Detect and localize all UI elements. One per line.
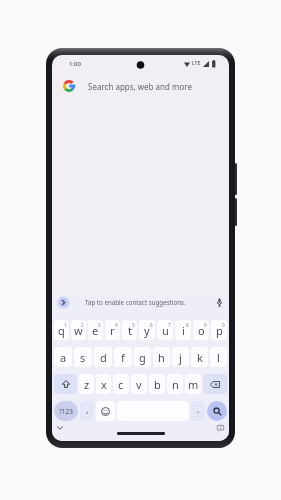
staticText: g (139, 350, 146, 365)
button[interactable]: b (149, 374, 165, 394)
staticText: c (118, 377, 124, 392)
staticText: 3 (98, 322, 101, 328)
button[interactable]: w (71, 320, 86, 340)
button[interactable]: x (96, 374, 111, 394)
button[interactable]: g (134, 347, 151, 367)
staticText: LTE (192, 60, 201, 67)
button[interactable]: a (54, 347, 72, 367)
button[interactable] (96, 401, 115, 421)
button[interactable]: s (74, 347, 92, 367)
staticText: w (74, 323, 83, 338)
button[interactable] (54, 374, 77, 394)
button[interactable]: ?123 (54, 401, 78, 421)
staticText: 0 (222, 322, 225, 328)
button[interactable]: , (80, 401, 94, 421)
staticText: m (188, 377, 199, 392)
staticText: d (100, 350, 107, 365)
button[interactable]: o (193, 320, 209, 340)
staticText: k (197, 350, 203, 365)
button[interactable] (57, 426, 63, 430)
button[interactable]: d (94, 347, 112, 367)
button[interactable]: i (175, 320, 191, 340)
staticText: e (92, 323, 99, 338)
staticText: f (121, 350, 125, 365)
button[interactable]: n (167, 374, 183, 394)
staticText: 1 (64, 322, 67, 328)
button[interactable] (207, 401, 227, 421)
staticText: 1:00 (69, 60, 81, 68)
staticText: , (86, 403, 89, 415)
staticText: b (154, 377, 161, 392)
staticText: p (216, 323, 223, 338)
staticText: u (162, 323, 169, 338)
button[interactable]: l (210, 347, 227, 367)
staticText: 8 (186, 322, 189, 328)
button[interactable]: p (211, 320, 227, 340)
staticText: 5 (132, 322, 135, 328)
staticText: ?123 (59, 407, 73, 416)
staticText: x (101, 377, 107, 392)
staticText: q (58, 323, 65, 338)
button[interactable]: e (88, 320, 103, 340)
button[interactable]: v (131, 374, 147, 394)
staticText: n (172, 377, 179, 392)
staticText: h (158, 350, 165, 365)
button[interactable]: m (185, 374, 201, 394)
staticText: r (110, 323, 115, 338)
button[interactable]: Search apps, web and more (63, 70, 219, 102)
button[interactable]: . (191, 401, 205, 421)
staticText: . (197, 403, 200, 415)
button[interactable] (203, 374, 227, 394)
button[interactable]: h (153, 347, 170, 367)
button[interactable]: t (122, 320, 137, 340)
staticText: o (198, 323, 205, 338)
button[interactable] (216, 298, 223, 307)
button[interactable]: z (79, 374, 94, 394)
staticText: 6 (150, 322, 153, 328)
staticText: i (182, 323, 185, 338)
button[interactable]: k (191, 347, 208, 367)
staticText: 2 (81, 322, 84, 328)
staticText: t (128, 323, 132, 338)
staticText: s (80, 350, 86, 365)
staticText: 7 (168, 322, 171, 328)
button[interactable]: q (54, 320, 69, 340)
staticText: 4 (115, 322, 118, 328)
button[interactable] (217, 425, 224, 431)
button[interactable]: f (114, 347, 132, 367)
staticText: 9 (204, 322, 207, 328)
staticText: z (84, 377, 90, 392)
button[interactable] (57, 296, 70, 309)
button[interactable]: y (139, 320, 155, 340)
staticText: Search apps, web and more (88, 81, 192, 92)
staticText: y (144, 323, 150, 338)
button[interactable]: u (157, 320, 173, 340)
staticText: v (136, 377, 142, 392)
button[interactable]: c (113, 374, 129, 394)
staticText: l (217, 350, 220, 365)
staticText: Tap to enable contact suggestions. (85, 298, 186, 306)
staticText: j (179, 350, 182, 365)
staticText: a (60, 350, 67, 365)
button[interactable]: j (172, 347, 189, 367)
button[interactable]: r (105, 320, 120, 340)
